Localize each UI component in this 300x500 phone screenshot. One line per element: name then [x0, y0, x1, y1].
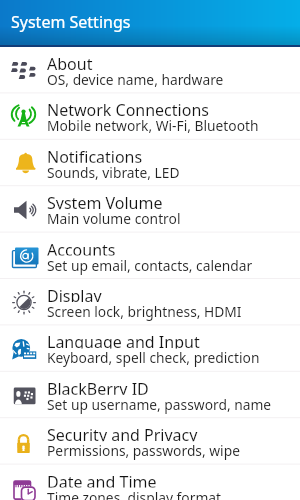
staticText: Set up email, contacts, calendar	[47, 256, 253, 275]
staticText: Mobile network, Wi-Fi, Bluetooth	[47, 116, 259, 135]
staticText: Set up username, password, name	[47, 395, 272, 414]
staticText: Language and Input	[47, 331, 200, 348]
button[interactable]: Accounts	[0, 233, 300, 279]
staticText: About	[47, 53, 93, 70]
staticText: System Settings	[11, 11, 131, 33]
staticText: Network Connections	[47, 99, 209, 116]
staticText: Date and Time	[47, 471, 157, 488]
button[interactable]: BlackBerry ID	[0, 372, 300, 418]
staticText: Accounts	[47, 239, 116, 256]
staticText: Main volume control	[47, 209, 181, 228]
staticText: Permissions, passwords, wipe	[47, 441, 240, 460]
staticText: Display	[47, 285, 102, 302]
button[interactable]: Date and Time	[0, 465, 300, 500]
button[interactable]: Display	[0, 279, 300, 325]
button[interactable]: Language and Input	[0, 325, 300, 371]
staticText: Notifications	[47, 146, 143, 163]
staticText: Keyboard, spell check, prediction	[47, 348, 260, 367]
staticText: Security and Privacy	[47, 424, 198, 441]
button[interactable]: Notifications	[0, 140, 300, 186]
button[interactable]: Security and Privacy	[0, 418, 300, 464]
staticText: BlackBerry ID	[47, 378, 149, 395]
button[interactable]: System Volume	[0, 186, 300, 232]
staticText: System Volume	[47, 192, 163, 209]
staticText: Screen lock, brightness, HDMI	[47, 302, 242, 321]
staticText: OS, device name, hardware	[47, 70, 224, 89]
button[interactable]: Network Connections	[0, 93, 300, 139]
button[interactable]: About	[0, 47, 300, 93]
staticText: Time zones, display format	[47, 488, 222, 500]
staticText: Sounds, vibrate, LED	[47, 163, 180, 182]
